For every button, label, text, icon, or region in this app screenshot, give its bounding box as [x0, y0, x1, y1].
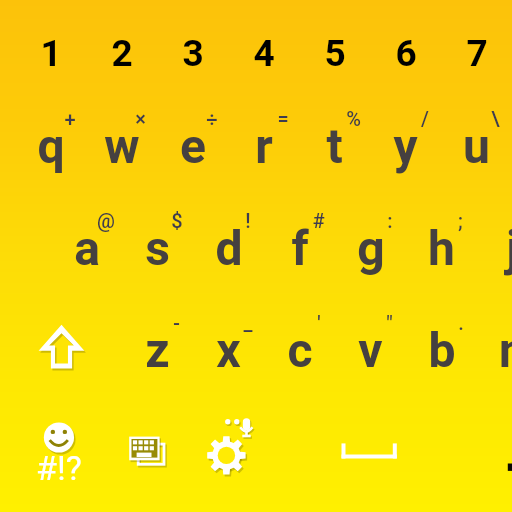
- staticText: s: [145, 220, 170, 276]
- staticText: 7: [466, 32, 488, 75]
- button[interactable]: j: [477, 197, 512, 299]
- staticText: r: [255, 118, 273, 174]
- button[interactable]: w: [86, 95, 157, 197]
- button[interactable]: c: [264, 299, 335, 401]
- staticText: @: [97, 209, 115, 232]
- staticText: h: [428, 220, 455, 276]
- staticText: \: [491, 107, 500, 130]
- staticText: ÷: [206, 107, 218, 130]
- button[interactable]: Shift: [20, 310, 102, 390]
- button[interactable]: q: [15, 95, 86, 197]
- staticText: -: [173, 311, 180, 334]
- staticText: v: [358, 322, 383, 378]
- staticText: #!?: [36, 448, 82, 480]
- staticText: ×: [135, 107, 146, 130]
- button[interactable]: 2: [86, 2, 157, 104]
- button[interactable]: v: [335, 299, 406, 401]
- staticText: ;: [458, 209, 463, 232]
- button[interactable]: g: [335, 197, 406, 299]
- staticText: 3: [182, 32, 204, 75]
- staticText: z: [145, 322, 170, 378]
- button[interactable]: Enter: [496, 450, 512, 486]
- staticText: 4: [253, 32, 275, 75]
- button[interactable]: Switch keyboard: [124, 430, 180, 476]
- staticText: 2: [111, 32, 133, 75]
- button[interactable]: n: [477, 299, 512, 401]
- staticText: j: [506, 220, 512, 276]
- staticText: 6: [395, 32, 417, 75]
- button[interactable]: 1: [15, 2, 86, 104]
- staticText: +: [64, 107, 76, 130]
- button[interactable]: Settings and voice input: [200, 410, 264, 486]
- staticText: 5: [324, 32, 346, 75]
- button[interactable]: u: [441, 95, 512, 197]
- button[interactable]: r: [228, 95, 299, 197]
- staticText: %: [346, 107, 361, 130]
- staticText: t: [326, 118, 343, 174]
- button[interactable]: f: [264, 197, 335, 299]
- staticText: .: [458, 311, 464, 334]
- staticText: f: [291, 220, 309, 276]
- button[interactable]: 5: [299, 2, 370, 104]
- staticText: ": [386, 311, 393, 334]
- button[interactable]: 3: [157, 2, 228, 104]
- button[interactable]: 7: [441, 2, 512, 104]
- staticText: e: [180, 118, 206, 174]
- button[interactable]: a: [51, 197, 122, 299]
- button[interactable]: e: [157, 95, 228, 197]
- staticText: 1: [40, 32, 62, 75]
- button[interactable]: s: [122, 197, 193, 299]
- staticText: c: [287, 322, 313, 378]
- staticText: w: [104, 118, 140, 174]
- staticText: u: [463, 118, 490, 174]
- button[interactable]: 4: [228, 2, 299, 104]
- staticText: #: [312, 209, 325, 232]
- button[interactable]: Space: [320, 420, 440, 480]
- staticText: _: [243, 311, 253, 334]
- staticText: d: [215, 220, 243, 276]
- staticText: :: [387, 209, 393, 232]
- staticText: n: [499, 322, 512, 378]
- staticText: y: [393, 118, 418, 174]
- staticText: =: [277, 107, 289, 130]
- staticText: $: [171, 209, 183, 232]
- button[interactable]: b: [406, 299, 477, 401]
- button[interactable]: z: [122, 299, 193, 401]
- button[interactable]: t: [299, 95, 370, 197]
- staticText: g: [357, 220, 385, 276]
- button[interactable]: Emoji and symbols: [20, 405, 100, 495]
- staticText: a: [74, 220, 100, 276]
- button[interactable]: d: [193, 197, 264, 299]
- staticText: !: [245, 209, 251, 232]
- button[interactable]: 6: [370, 2, 441, 104]
- staticText: q: [37, 118, 65, 174]
- staticText: b: [428, 322, 456, 378]
- button[interactable]: h: [406, 197, 477, 299]
- staticText: /: [421, 107, 429, 130]
- staticText: ': [317, 311, 321, 334]
- staticText: x: [216, 322, 241, 378]
- button[interactable]: x: [193, 299, 264, 401]
- button[interactable]: y: [370, 95, 441, 197]
